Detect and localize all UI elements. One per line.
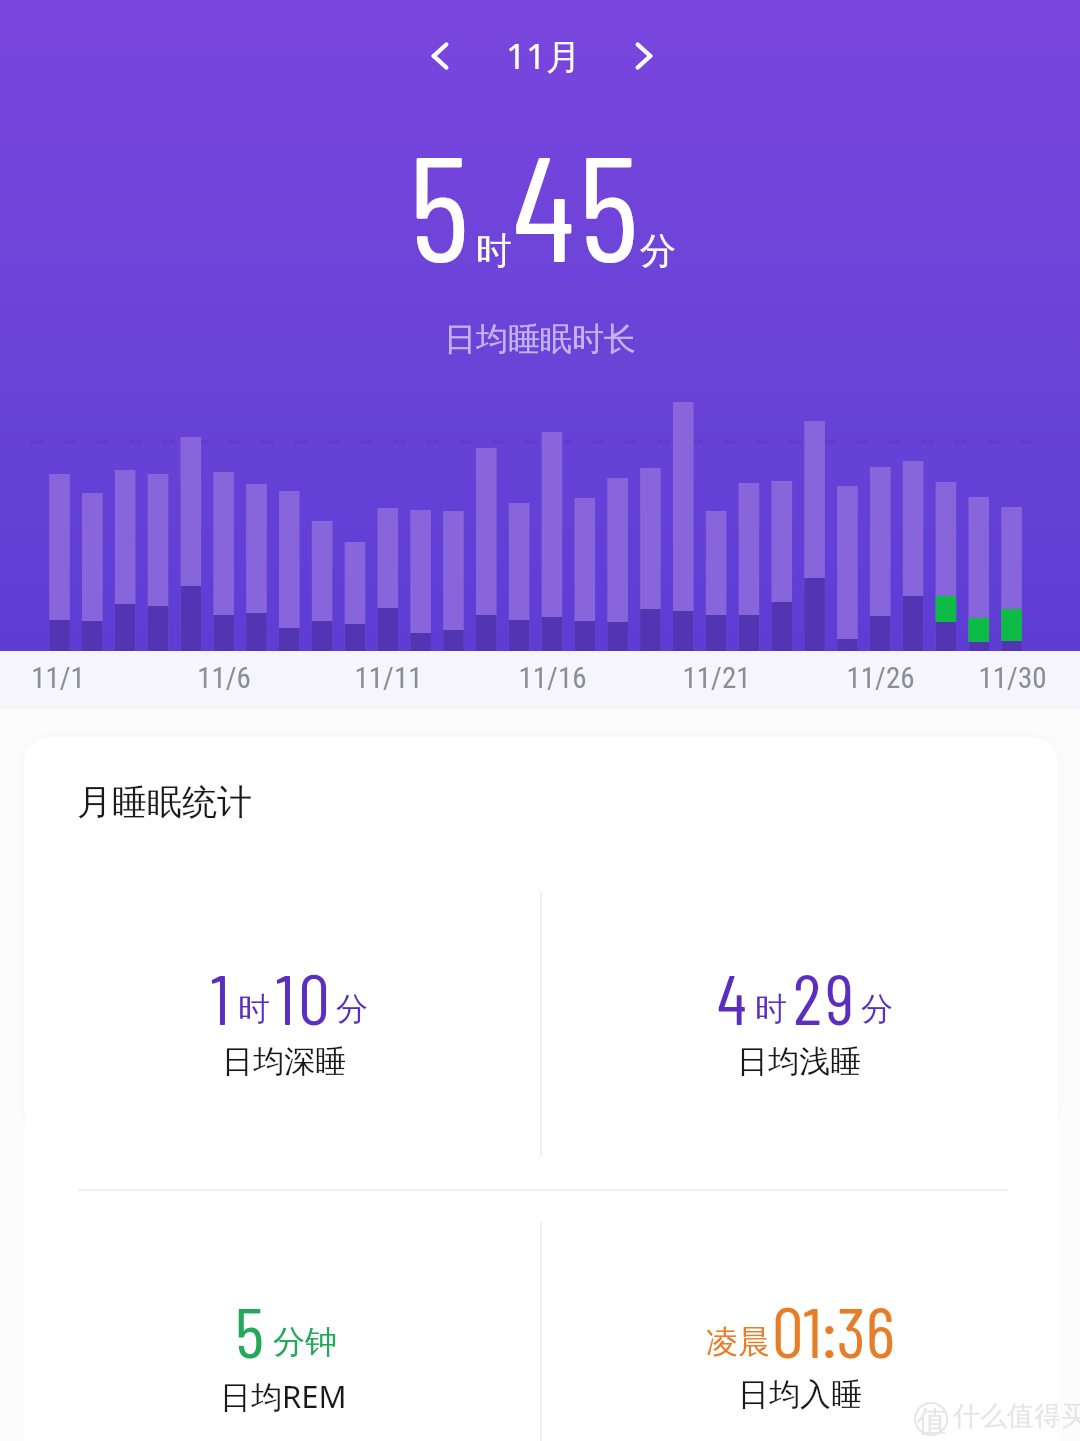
button[interactable]: 1 xyxy=(83,954,483,1134)
staticText: 45 xyxy=(513,114,643,292)
staticText: 11/21 xyxy=(682,661,751,695)
staticText: 日均入睡 xyxy=(738,1375,862,1414)
button[interactable]: 11月 xyxy=(488,16,600,96)
staticText: 分钟 xyxy=(273,1322,337,1362)
staticText: 11/11 xyxy=(354,661,423,695)
staticText: 日均深睡 xyxy=(222,1042,346,1081)
staticText: 10 xyxy=(276,954,334,1039)
staticText: 日均浅睡 xyxy=(737,1042,861,1081)
staticText: 11/30 xyxy=(978,661,1047,695)
staticText: 什么值得买 xyxy=(953,1399,1080,1433)
button[interactable]: Previous month xyxy=(400,16,480,96)
staticText: 分 xyxy=(640,228,676,273)
staticText: 时 xyxy=(476,228,512,273)
staticText: 日均REM xyxy=(220,1375,347,1417)
staticText: 4 xyxy=(717,954,751,1039)
staticText: 分 xyxy=(861,989,893,1029)
staticText: 值 xyxy=(917,1403,946,1440)
staticText: 时 xyxy=(755,989,787,1029)
button[interactable]: 5 xyxy=(83,1287,483,1441)
staticText: 5 xyxy=(235,1287,269,1372)
staticText: 日均睡眠时长 xyxy=(444,319,636,359)
staticText: 凌晨 xyxy=(706,1322,770,1362)
button[interactable]: Next month xyxy=(604,16,684,96)
staticText: 分 xyxy=(336,989,368,1029)
button[interactable]: 4 xyxy=(599,954,999,1134)
staticText: 01:36 xyxy=(772,1287,895,1372)
button[interactable]: 凌晨 xyxy=(599,1287,999,1441)
staticText: 时 xyxy=(238,989,270,1029)
staticText: 11/6 xyxy=(197,661,251,695)
staticText: 1 xyxy=(211,954,234,1039)
staticText: 11/1 xyxy=(31,661,85,695)
staticText: 11/16 xyxy=(518,661,587,695)
staticText: 5 xyxy=(409,114,470,292)
staticText: 月睡眠统计 xyxy=(77,780,252,824)
staticText: 29 xyxy=(793,954,859,1039)
staticText: 11/26 xyxy=(846,661,915,695)
staticText: 11月 xyxy=(506,32,582,80)
